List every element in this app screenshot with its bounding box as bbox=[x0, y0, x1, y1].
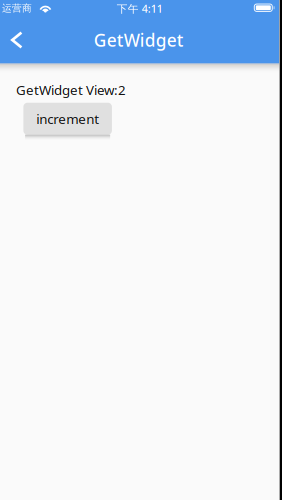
staticText: 下午 4:11 bbox=[117, 1, 163, 16]
button[interactable]: Back bbox=[0, 15, 33, 63]
button[interactable]: increment bbox=[23, 103, 112, 135]
staticText: GetWidget bbox=[94, 28, 184, 51]
staticText: GetWidget View:2 bbox=[16, 81, 126, 99]
staticText: increment bbox=[36, 110, 99, 128]
staticText: 运营商 bbox=[2, 2, 32, 14]
